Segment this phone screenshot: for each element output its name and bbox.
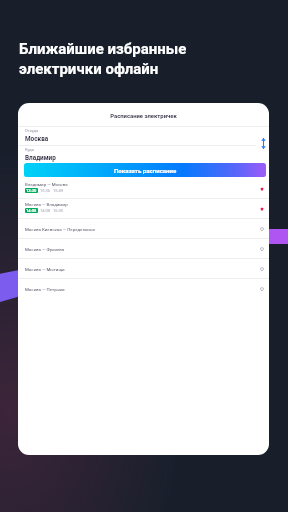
staticText: Владимир — Москва (25, 182, 68, 187)
button[interactable]: Показать расписание (24, 163, 266, 177)
button[interactable]: Москва — Мытищи (18, 259, 269, 279)
other: Избранное (260, 287, 264, 291)
other: Избранное (260, 207, 264, 211)
button[interactable]: Владимир — Москва (18, 179, 269, 199)
staticText: 15:36 15:49 (40, 188, 63, 193)
staticText: Москва — Фрязево (25, 247, 65, 252)
other: Избранное (260, 267, 264, 271)
other: Избранное (260, 247, 264, 251)
button[interactable]: Поменять местами (255, 135, 269, 151)
button[interactable]: Москва — Фрязево (18, 239, 269, 259)
staticText: Москва — Мытищи (25, 267, 65, 272)
button[interactable]: Куда (18, 145, 269, 164)
staticText: 13:30 (26, 188, 37, 193)
button[interactable]: Москва — Владимир (18, 199, 269, 219)
staticText: Откуда (25, 128, 39, 133)
staticText: Москва — Владимир (25, 202, 68, 207)
staticText: Москва (25, 135, 49, 143)
button[interactable]: Откуда (18, 126, 269, 145)
other: Избранное (260, 187, 264, 191)
staticText: Москва Киевская — Переделкино (25, 227, 95, 232)
staticText: Расписание электричек (18, 113, 269, 120)
button[interactable]: Москва Киевская — Переделкино (18, 219, 269, 239)
staticText: 14:08 (26, 208, 37, 213)
staticText: Показать расписание (114, 167, 177, 174)
staticText: Москва — Петушки (25, 287, 65, 292)
staticText: Ближайшие избранные электрички офлайн (19, 40, 187, 77)
staticText: Владимир (25, 154, 56, 162)
other: Избранное (260, 227, 264, 231)
button[interactable]: Москва — Петушки (18, 279, 269, 299)
staticText: Куда (25, 147, 34, 152)
staticText: 14:08 16:35 (40, 208, 63, 213)
